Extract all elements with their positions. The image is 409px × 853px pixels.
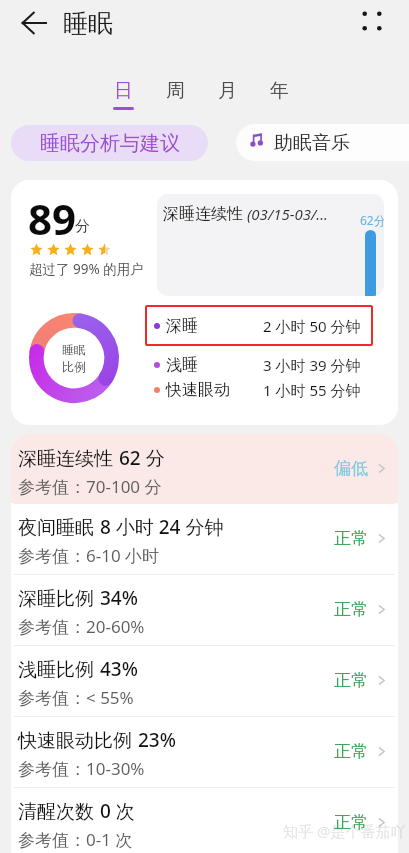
button[interactable]: 深睡比例	[11, 574, 398, 645]
button[interactable]: 深睡连续性	[157, 194, 384, 296]
staticText: 睡眠	[63, 8, 113, 39]
button[interactable]: 浅睡	[145, 350, 373, 379]
staticText: 比例	[62, 359, 86, 374]
staticText: 清醒次数	[18, 800, 94, 824]
button[interactable]: 周	[149, 62, 201, 112]
staticText: 分	[75, 217, 90, 236]
staticText: 深睡连续性	[18, 447, 113, 471]
staticText: 深睡连续性	[163, 204, 243, 224]
staticText: 参考值：10-30%	[18, 757, 145, 780]
staticText: 浅睡	[166, 355, 198, 375]
button[interactable]: 夜间睡眠	[11, 503, 398, 574]
staticText: 超过了 99% 的用户	[29, 260, 144, 278]
staticText: 睡眠	[62, 342, 86, 357]
staticText: 偏低	[334, 458, 368, 479]
staticText: 62 分	[119, 445, 165, 471]
staticText: 2 小时 50 分钟	[263, 316, 361, 336]
staticText: 参考值：< 55%	[18, 686, 134, 709]
button[interactable]: 月	[201, 62, 253, 112]
staticText: 43%	[100, 656, 138, 682]
button[interactable]: 深睡	[145, 305, 373, 346]
staticText: 浅睡比例	[18, 658, 94, 682]
staticText: 62分	[360, 212, 384, 228]
staticText: 1 小时 55 分钟	[263, 380, 361, 400]
staticText: 89	[28, 190, 77, 247]
staticText: 正常	[334, 741, 368, 762]
button[interactable]: 助眠音乐	[251, 124, 350, 161]
staticText: 参考值：20-60%	[18, 615, 145, 638]
staticText: 夜间睡眠	[18, 516, 94, 540]
button[interactable]: 年	[253, 62, 305, 112]
button[interactable]: More options	[350, 0, 394, 43]
staticText: 日	[114, 79, 133, 103]
button[interactable]: 快速眼动比例	[11, 716, 398, 787]
button[interactable]: 浅睡比例	[11, 645, 398, 716]
staticText: 睡眠分析与建议	[40, 131, 180, 156]
button[interactable]: Back	[12, 1, 56, 45]
staticText: 年	[270, 79, 289, 103]
staticText: 参考值：6-10 小时	[18, 544, 160, 567]
staticText: 周	[166, 79, 185, 103]
button[interactable]: 清醒次数	[11, 787, 398, 853]
staticText: 正常	[334, 599, 368, 620]
staticText: 0 次	[100, 798, 135, 824]
staticText: 3 小时 39 分钟	[263, 355, 361, 375]
staticText: 月	[218, 79, 237, 103]
button[interactable]: 日	[97, 62, 149, 112]
staticText: 正常	[334, 812, 368, 833]
button[interactable]: 睡眠分析与建议	[11, 125, 208, 161]
staticText: (03/15-03/...	[247, 204, 328, 224]
staticText: 助眠音乐	[274, 131, 350, 155]
staticText: 深睡比例	[18, 587, 94, 611]
staticText: 34%	[100, 585, 138, 611]
staticText: 快速眼动	[166, 380, 230, 400]
staticText: 参考值：70-100 分	[18, 475, 162, 498]
staticText: 快速眼动比例	[18, 729, 132, 753]
staticText: 正常	[334, 528, 368, 549]
staticText: 深睡	[166, 316, 198, 336]
button[interactable]: 深睡连续性	[11, 434, 398, 503]
staticText: 参考值：0-1 次	[18, 828, 133, 851]
staticText: 23%	[138, 727, 176, 753]
staticText: 8 小时 24 分钟	[100, 514, 224, 540]
staticText: 正常	[334, 670, 368, 691]
button[interactable]: 快速眼动	[145, 375, 373, 404]
staticText: 知乎 @是个番茄吖	[283, 821, 406, 841]
